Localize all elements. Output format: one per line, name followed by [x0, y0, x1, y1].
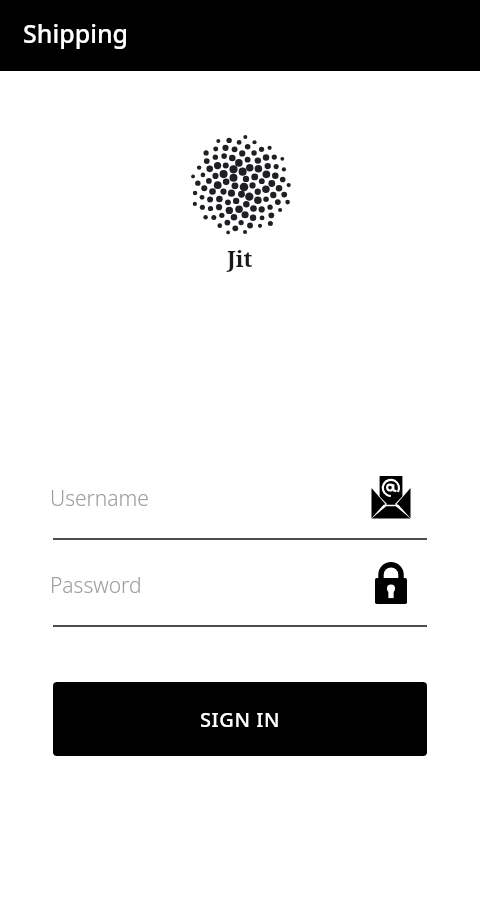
other: Password — [375, 562, 407, 604]
staticText: Password — [50, 571, 142, 600]
staticText: Shipping — [23, 16, 129, 50]
staticText: Username — [50, 484, 149, 513]
staticText: SIGN IN — [200, 706, 281, 733]
other: Email address — [371, 475, 411, 519]
button[interactable]: SIGN IN — [53, 682, 427, 756]
button[interactable]: Username — [53, 486, 427, 540]
staticText: Jit — [227, 243, 253, 273]
button[interactable]: Password — [53, 573, 427, 627]
